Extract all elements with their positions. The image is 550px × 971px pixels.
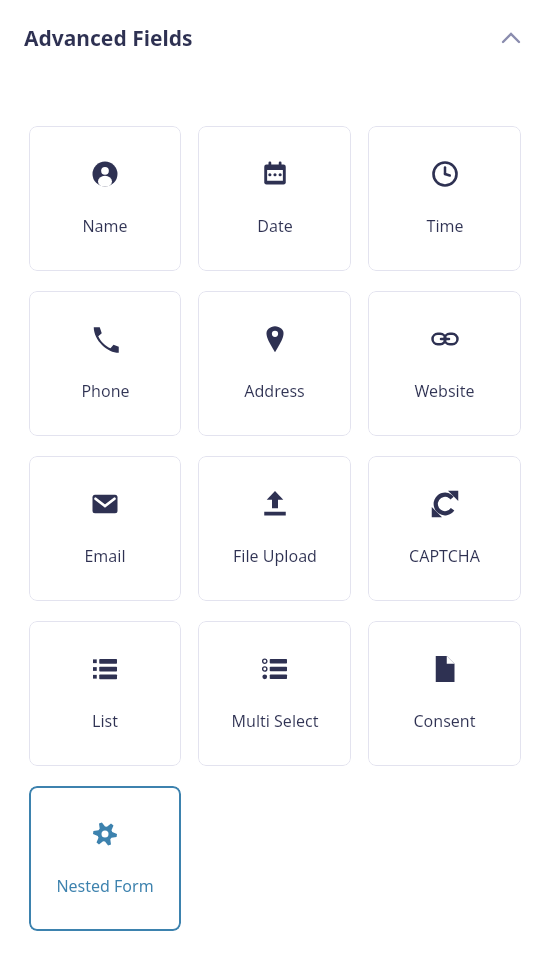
button[interactable]: CAPTCHA <box>368 456 521 601</box>
button[interactable]: Consent <box>368 621 521 766</box>
staticText: CAPTCHA <box>409 545 480 567</box>
button[interactable]: Phone <box>29 291 181 436</box>
staticText: Date <box>257 215 293 237</box>
staticText: File Upload <box>233 545 317 567</box>
button[interactable]: Multi Select <box>198 621 351 766</box>
staticText: Nested Form <box>56 875 154 897</box>
staticText: Name <box>82 215 128 237</box>
staticText: Website <box>414 380 475 402</box>
button[interactable]: Nested Form <box>29 786 181 931</box>
staticText: Email <box>84 545 126 567</box>
staticText: Multi Select <box>231 710 319 732</box>
staticText: List <box>92 710 118 732</box>
staticText: Consent <box>413 710 476 732</box>
button[interactable]: List <box>29 621 181 766</box>
button[interactable]: Time <box>368 126 521 271</box>
button[interactable]: Name <box>29 126 181 271</box>
staticText: Phone <box>81 380 130 402</box>
staticText: Time <box>426 215 464 237</box>
button[interactable]: Website <box>368 291 521 436</box>
button[interactable]: Address <box>198 291 351 436</box>
staticText: Advanced Fields <box>24 24 193 53</box>
button[interactable]: Email <box>29 456 181 601</box>
staticText: Address <box>244 380 305 402</box>
button[interactable]: Collapse section <box>490 17 532 59</box>
button[interactable]: File Upload <box>198 456 351 601</box>
button[interactable]: Date <box>198 126 351 271</box>
